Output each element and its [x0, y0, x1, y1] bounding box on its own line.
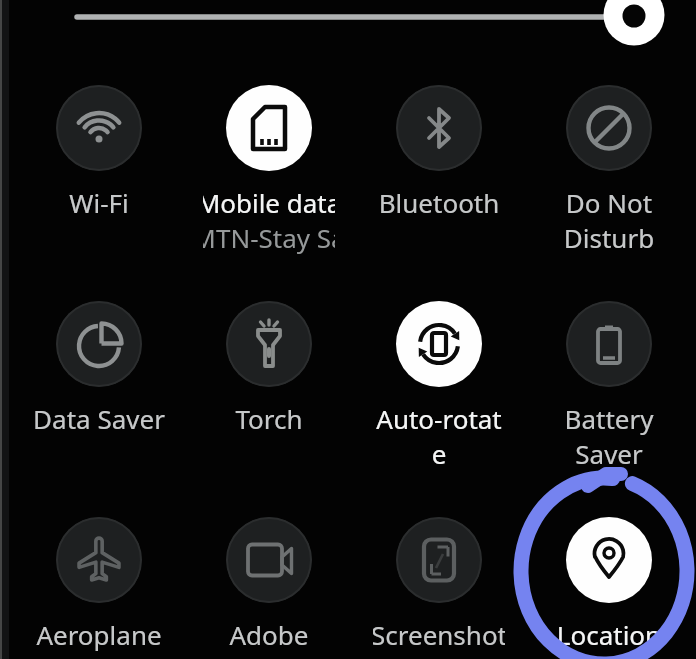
staticText: Torch — [203, 401, 335, 436]
button[interactable]: Screenshot — [354, 517, 524, 659]
staticText: Auto-rotat — [373, 401, 505, 436]
staticText: e — [373, 436, 505, 471]
staticText: Battery — [543, 401, 675, 436]
staticText: Do Not — [543, 185, 675, 220]
staticText: Disturb — [543, 220, 675, 255]
button[interactable]: Data Saver — [14, 301, 184, 659]
staticText: Adobe — [203, 617, 335, 652]
staticText: Wi-Fi — [33, 185, 165, 220]
button[interactable]: Torch — [184, 301, 354, 659]
staticText: Location — [543, 617, 675, 652]
button[interactable]: Aeroplane — [14, 517, 184, 659]
staticText: Bluetooth — [373, 185, 505, 220]
button[interactable]: Bluetooth — [354, 85, 524, 659]
staticText: Mobile data — [203, 185, 335, 220]
button[interactable]: Adobe — [184, 517, 354, 659]
staticText: MTN-Stay Sa — [203, 220, 335, 255]
button[interactable]: Wi-Fi — [14, 85, 184, 659]
staticText: Screenshot — [373, 617, 505, 652]
button[interactable] — [0, 0, 696, 46]
button[interactable]: Mobile data — [184, 85, 354, 659]
button[interactable]: Do Not — [524, 85, 694, 659]
staticText: Aeroplane — [33, 617, 165, 652]
staticText: Data Saver — [33, 401, 165, 436]
staticText: Saver — [543, 436, 675, 471]
button[interactable]: Battery — [524, 301, 694, 659]
button[interactable]: Location — [524, 517, 694, 659]
button[interactable]: Auto-rotat — [354, 301, 524, 659]
